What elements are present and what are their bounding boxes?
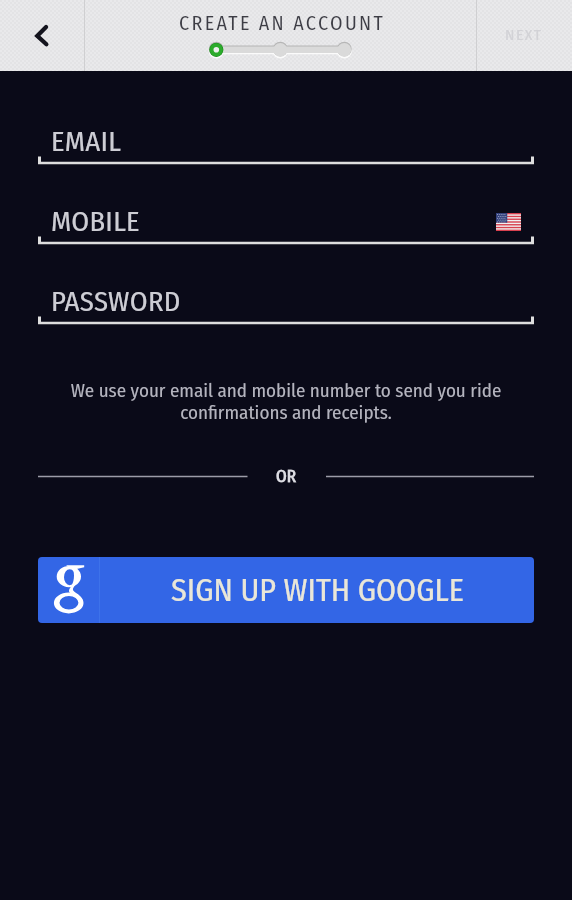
button[interactable]: Select country: [490, 207, 527, 237]
staticText: SIGN UP WITH GOOGLE: [171, 571, 464, 609]
staticText: We use your email and mobile number to s…: [53, 379, 519, 424]
staticText: CREATE AN ACCOUNT: [179, 11, 386, 35]
staticText: EMAIL: [51, 124, 122, 158]
button[interactable]: SIGN UP WITH GOOGLE: [38, 557, 534, 623]
staticText: NEXT: [505, 26, 543, 45]
button[interactable]: MOBILE: [38, 195, 534, 251]
button[interactable]: PASSWORD: [38, 275, 534, 331]
button[interactable]: Back: [0, 0, 84, 71]
button[interactable]: EMAIL: [38, 115, 534, 171]
button[interactable]: NEXT: [476, 0, 572, 71]
staticText: PASSWORD: [51, 284, 181, 318]
staticText: OR: [276, 466, 296, 486]
staticText: MOBILE: [51, 204, 140, 238]
